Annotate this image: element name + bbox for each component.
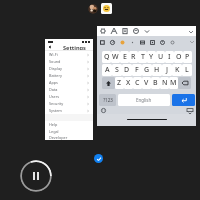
button[interactable]: Emoji 4 [128,38,136,46]
button[interactable]: Security [45,100,93,107]
button[interactable]: Emoji 5 [138,38,146,46]
staticText: Battery [49,73,62,78]
button[interactable]: English [118,94,170,106]
staticText: S [115,65,119,75]
staticText: P [185,52,190,62]
button[interactable]: Legal [45,128,93,135]
button[interactable]: Settings [98,26,108,36]
staticText: M [170,78,177,88]
staticText: ?123 [103,97,113,103]
button[interactable]: Pause [20,160,52,192]
button[interactable]: V [142,77,151,89]
staticText: N [162,78,168,88]
button[interactable]: Y [147,51,156,63]
staticText: D [124,65,130,75]
button[interactable]: Battery [45,72,93,79]
button[interactable]: Profile avatar [88,4,98,14]
staticText: O [176,52,182,62]
button[interactable]: S [112,64,122,76]
button[interactable]: Wi-Fi [45,51,93,58]
button[interactable]: P [183,51,192,63]
button[interactable]: Z [115,77,124,89]
button[interactable]: Apps [45,79,93,86]
staticText: K [175,65,180,75]
button[interactable]: W [111,51,120,63]
button[interactable]: L [182,64,192,76]
button[interactable]: System [45,107,93,114]
staticText: V [144,78,149,88]
button[interactable]: C [133,77,142,89]
button[interactable]: R [129,51,138,63]
staticText: E [123,52,127,62]
button[interactable]: H [152,64,162,76]
staticText: G [144,65,150,75]
button[interactable]: Themes [109,26,119,36]
button[interactable]: K [172,64,182,76]
staticText: English [136,97,152,103]
button[interactable]: Backspace [178,77,191,89]
button[interactable]: Emoji keyboard [100,107,107,114]
button[interactable]: B [151,77,160,89]
button[interactable]: Emoji 3 [118,38,126,46]
staticText: Users [49,94,60,99]
staticText: C [135,78,140,88]
staticText: Legal [49,129,59,134]
staticText: L [185,65,189,75]
button[interactable]: U [156,51,165,63]
button[interactable]: N [160,77,169,89]
button[interactable]: Emoji 6 [148,38,156,46]
button[interactable]: More [142,26,152,36]
button[interactable]: Emoji 1 [98,38,106,46]
button[interactable]: D [122,64,132,76]
staticText: Q [104,52,110,62]
button[interactable]: Hide keyboard [186,107,193,114]
button[interactable]: Emoji 8 [168,38,176,46]
button[interactable]: Data [45,86,93,93]
staticText: Settings [63,44,86,50]
staticText: Help [49,122,58,127]
button[interactable]: T [138,51,147,63]
staticText: Apps [49,80,58,85]
button[interactable]: Expand [187,28,194,35]
staticText: I [168,52,171,62]
button[interactable]: ?123 [99,94,116,106]
button[interactable]: Users [45,93,93,100]
staticText: Display [49,66,62,71]
button[interactable]: Enter [172,94,195,106]
staticText: System [49,108,62,113]
button[interactable]: Emoji 7 [158,38,166,46]
staticText: W [112,52,119,62]
button[interactable]: F [132,64,142,76]
button[interactable]: X [124,77,133,89]
button[interactable]: Sticker [131,26,141,36]
staticText: H [154,65,160,75]
staticText: F [135,65,139,75]
button[interactable]: Sound [45,58,93,65]
button[interactable]: M [169,77,178,89]
button[interactable]: Back [48,45,52,49]
staticText: J [166,65,169,75]
staticText: B [153,78,158,88]
button[interactable]: Developer [45,135,93,140]
button[interactable]: G [142,64,152,76]
staticText: T [141,52,145,62]
button[interactable]: Emoji 2 [108,38,116,46]
button[interactable]: Q [102,51,111,63]
staticText: U [158,52,164,62]
button[interactable]: O [174,51,183,63]
button[interactable]: Emoji app icon [101,3,112,14]
button[interactable]: J [162,64,172,76]
staticText: A [105,65,110,75]
staticText: Y [149,52,154,62]
button[interactable]: Help [45,121,93,128]
button[interactable]: I [165,51,174,63]
button[interactable]: Shift [102,77,115,89]
staticText: Sound [49,59,61,64]
button[interactable]: E [120,51,129,63]
button[interactable]: A [102,64,112,76]
button[interactable]: Display [45,65,93,72]
button[interactable]: Verified [94,154,103,163]
staticText: Wi-Fi [49,52,58,57]
button[interactable]: Clipboard [120,26,130,36]
